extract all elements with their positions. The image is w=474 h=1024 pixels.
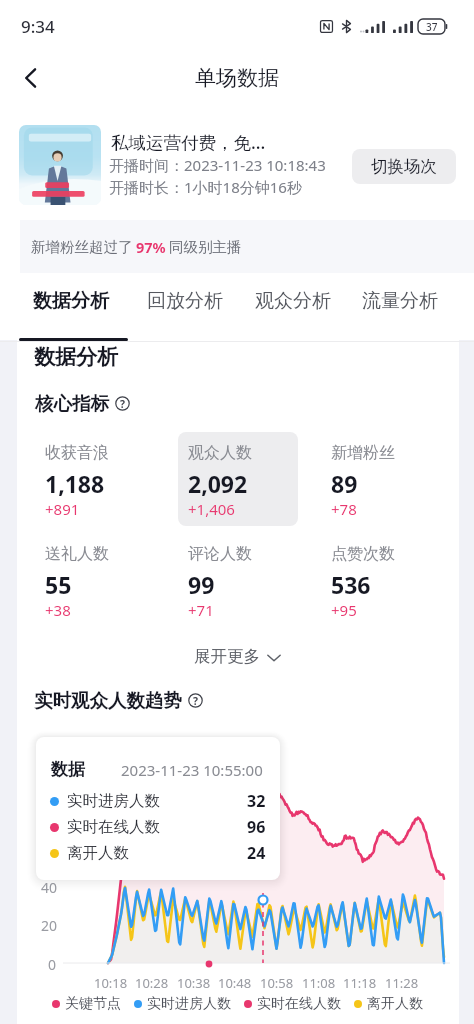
staticText: 开播时间：2023-11-23 10:18:43 [109, 155, 326, 175]
staticText: +71 [188, 600, 214, 620]
staticText: 实时观众人数趋势 [34, 689, 182, 712]
staticText: 实时进房人数 [147, 995, 231, 1013]
button[interactable]: 评论人数 [177, 533, 297, 627]
button[interactable]: 送礼人数 [34, 533, 154, 627]
button[interactable]: 离开人数 [354, 995, 423, 1013]
staticText: +78 [331, 499, 357, 519]
staticText: ? [120, 397, 126, 411]
button[interactable]: 观众分析 [241, 273, 345, 329]
staticText: 核心指标 [35, 392, 109, 415]
staticText: 开播时长：1小时18分钟16秒 [109, 177, 302, 197]
staticText: 9:34 [21, 15, 55, 38]
staticText: 送礼人数 [45, 544, 109, 564]
staticText: 单场数据 [195, 65, 279, 91]
button[interactable]: 切换场次 [352, 149, 456, 184]
button[interactable]: 点赞次数 [320, 533, 440, 627]
staticText: 11:08 [302, 974, 336, 992]
staticText: 观众分析 [255, 289, 331, 313]
staticText: 2,092 [188, 468, 248, 499]
staticText: 实时进房人数 [67, 791, 160, 811]
staticText: 同级别主播 [169, 238, 242, 256]
button[interactable]: 数据分析 [19, 273, 123, 329]
staticText: 离开人数 [67, 843, 129, 863]
staticText: 96 [247, 816, 266, 838]
button[interactable]: 流量分析 [348, 273, 452, 329]
button[interactable]: Back [9, 56, 53, 100]
staticText: 99 [188, 569, 215, 600]
staticText: 数据分析 [33, 289, 109, 313]
staticText: 10:38 [177, 974, 211, 992]
staticText: 24 [247, 842, 266, 864]
staticText: 实时在线人数 [257, 995, 341, 1013]
staticText: ? [193, 694, 199, 708]
staticText: 回放分析 [147, 289, 223, 313]
button[interactable]: 实时进房人数 [134, 995, 231, 1013]
staticText: 89 [331, 468, 358, 499]
staticText: 40 [41, 878, 58, 897]
button[interactable]: 回放分析 [133, 273, 237, 329]
staticText: 20 [41, 916, 58, 935]
staticText: 新增粉丝 [331, 443, 395, 463]
staticText: 1,188 [45, 468, 105, 499]
button[interactable]: 关键节点 [52, 995, 121, 1013]
staticText: 实时在线人数 [67, 817, 160, 837]
staticText: 收获音浪 [45, 443, 109, 463]
staticText: 536 [331, 569, 371, 600]
staticText: 离开人数 [367, 995, 423, 1013]
staticText: +95 [331, 600, 357, 620]
button[interactable]: 新增粉丝 [320, 432, 440, 526]
staticText: 切换场次 [371, 156, 437, 177]
staticText: +38 [45, 600, 71, 620]
staticText: 32 [247, 790, 266, 812]
button[interactable]: 观众人数 [177, 432, 297, 526]
button[interactable]: 展开更多 [184, 639, 290, 673]
staticText: 新增粉丝超过了 [31, 238, 133, 256]
staticText: 10:48 [218, 974, 252, 992]
staticText: 关键节点 [65, 995, 121, 1013]
staticText: 评论人数 [188, 544, 252, 564]
staticText: 私域运营付费，免... [111, 130, 266, 154]
staticText: 37 [426, 20, 438, 34]
staticText: 97% [136, 237, 166, 257]
staticText: 流量分析 [362, 289, 438, 313]
staticText: 11:18 [343, 974, 377, 992]
staticText: 0 [48, 955, 57, 974]
staticText: 10:58 [260, 974, 294, 992]
staticText: 数据分析 [34, 344, 118, 370]
staticText: 观众人数 [188, 443, 252, 463]
button[interactable]: 收获音浪 [34, 432, 154, 526]
button[interactable]: 实时在线人数 [244, 995, 341, 1013]
staticText: 点赞次数 [331, 544, 395, 564]
staticText: 数据 [51, 759, 85, 780]
staticText: 10:28 [135, 974, 169, 992]
staticText: +1,406 [188, 499, 235, 519]
staticText: 2023-11-23 10:55:00 [121, 760, 263, 780]
staticText: 展开更多 [194, 646, 260, 667]
staticText: +891 [45, 499, 80, 519]
staticText: 11:28 [385, 974, 419, 992]
staticText: 55 [45, 569, 72, 600]
staticText: 10:18 [94, 974, 128, 992]
